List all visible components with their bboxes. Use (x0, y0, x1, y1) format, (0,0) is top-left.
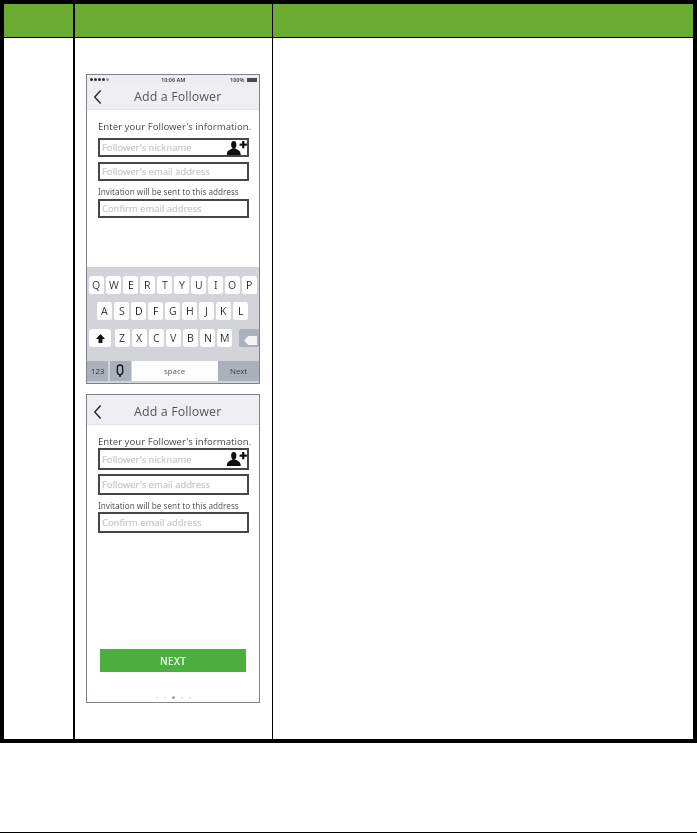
button[interactable]: S (114, 302, 129, 320)
button[interactable]: Backspace (239, 329, 260, 347)
staticText: U (195, 278, 203, 292)
button[interactable]: space (132, 361, 218, 381)
button[interactable]: Y (174, 276, 189, 294)
staticText: Confirm email address (102, 516, 202, 529)
button[interactable]: U (191, 276, 206, 294)
staticText: T (162, 278, 168, 292)
staticText: J (205, 304, 208, 318)
staticText: L (238, 304, 244, 318)
button[interactable]: Follower's nickname (98, 448, 249, 470)
staticText: A (101, 304, 108, 318)
staticText: Follower's nickname (102, 141, 192, 154)
button[interactable]: Back (94, 90, 101, 104)
button[interactable]: X (132, 329, 147, 347)
button[interactable]: F (148, 302, 163, 320)
staticText: F (153, 304, 159, 318)
staticText: Y (179, 278, 185, 292)
staticText: H (186, 304, 194, 318)
staticText: 123 (91, 366, 105, 377)
button[interactable]: D (131, 302, 146, 320)
staticText: V (170, 331, 177, 345)
staticText: N (204, 331, 212, 345)
button[interactable]: E (123, 276, 138, 294)
button[interactable]: Follower's email address (98, 162, 249, 181)
button[interactable]: Follower's nickname (98, 138, 249, 157)
button[interactable]: C (149, 329, 164, 347)
button[interactable]: Back (94, 405, 101, 419)
button[interactable]: Q (89, 276, 104, 294)
button[interactable]: B (183, 329, 198, 347)
staticText: K (220, 304, 227, 318)
staticText: W (109, 278, 119, 292)
button[interactable]: Confirm email address (98, 512, 249, 533)
button[interactable]: V (166, 329, 181, 347)
staticText: Invitation will be sent to this address (98, 500, 239, 511)
button[interactable]: Z (115, 329, 130, 347)
staticText: NEXT (160, 654, 187, 668)
button[interactable]: Next (218, 361, 260, 381)
staticText: 10:06 AM (161, 76, 186, 83)
button[interactable]: R (140, 276, 155, 294)
staticText: D (135, 304, 143, 318)
staticText: R (144, 278, 151, 292)
button[interactable]: Follower's email address (98, 474, 249, 495)
staticText: C (153, 331, 160, 345)
staticText: Q (92, 278, 101, 292)
staticText: I (214, 278, 218, 292)
staticText: E (128, 278, 134, 292)
button[interactable]: O (225, 276, 240, 294)
staticText: Follower's email address (102, 165, 211, 178)
button[interactable]: M (217, 329, 232, 347)
staticText: 100% (230, 76, 245, 83)
button[interactable]: NEXT (100, 649, 246, 672)
staticText: space (164, 366, 186, 377)
button[interactable]: Dictate (110, 361, 131, 381)
button[interactable]: I (208, 276, 223, 294)
staticText: G (169, 304, 177, 318)
button[interactable]: K (216, 302, 231, 320)
button[interactable]: J (199, 302, 214, 320)
button[interactable]: P (242, 276, 257, 294)
button[interactable]: L (233, 302, 248, 320)
button[interactable]: Page 3 (172, 696, 175, 699)
staticText: Follower's nickname (102, 453, 192, 466)
button[interactable]: T (157, 276, 172, 294)
button[interactable]: G (165, 302, 180, 320)
button[interactable]: W (106, 276, 121, 294)
staticText: M (220, 331, 230, 345)
staticText: P (246, 278, 253, 292)
staticText: Enter your Follower's information. (98, 435, 252, 448)
staticText: Confirm email address (102, 202, 202, 215)
staticText: Follower's email address (102, 478, 211, 491)
staticText: Next (230, 366, 248, 377)
staticText: Z (119, 331, 126, 345)
staticText: Add a Follower (134, 88, 222, 105)
staticText: Invitation will be sent to this address (98, 186, 239, 197)
staticText: Add a Follower (134, 403, 222, 420)
button[interactable]: 123 (87, 361, 108, 381)
button[interactable]: N (200, 329, 215, 347)
button[interactable]: A (97, 302, 112, 320)
staticText: Enter your Follower's information. (98, 120, 252, 133)
staticText: S (119, 304, 125, 318)
button[interactable]: H (182, 302, 197, 320)
staticText: X (136, 331, 143, 345)
button[interactable]: Confirm email address (98, 199, 249, 218)
button[interactable]: Shift (89, 329, 111, 347)
staticText: B (187, 331, 194, 345)
staticText: O (228, 278, 237, 292)
